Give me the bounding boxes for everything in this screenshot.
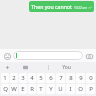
staticText: 5: [39, 74, 43, 82]
staticText: 9: [79, 74, 83, 82]
button[interactable]: You: [49, 62, 83, 72]
staticText: 10:22 am: [74, 6, 87, 10]
button[interactable]: Then you cannot: [29, 1, 94, 12]
button[interactable]: T: [37, 84, 45, 94]
button[interactable]: 7: [56, 73, 65, 83]
staticText: O: [78, 85, 83, 93]
button[interactable]: 0: [86, 73, 95, 83]
staticText: 8: [69, 74, 73, 82]
staticText: 3: [21, 74, 25, 82]
staticText: 0: [89, 74, 93, 82]
button[interactable]: 5: [37, 73, 45, 83]
button[interactable]: 1: [1, 73, 9, 83]
button[interactable]: W: [10, 84, 18, 94]
button[interactable]: E: [19, 84, 27, 94]
staticText: 2: [12, 74, 16, 82]
button[interactable]: Stickers: [14, 62, 36, 72]
staticText: W: [11, 85, 17, 93]
staticText: E: [21, 85, 25, 93]
button[interactable]: Emoji: [2, 51, 12, 61]
staticText: 1: [3, 74, 7, 82]
button[interactable]: 3: [19, 73, 27, 83]
button[interactable]: Camera: [84, 51, 94, 61]
staticText: Y: [49, 85, 53, 93]
staticText: 6: [49, 74, 53, 82]
staticText: I: [69, 85, 72, 93]
staticText: Q: [3, 85, 8, 93]
button[interactable]: [13, 51, 83, 60]
button[interactable]: I: [66, 84, 75, 94]
staticText: T: [39, 85, 43, 93]
staticText: You: [62, 64, 71, 71]
button[interactable]: Q: [1, 84, 9, 94]
button[interactable]: 4: [28, 73, 36, 83]
button[interactable]: R: [28, 84, 36, 94]
button[interactable]: U: [56, 84, 65, 94]
button[interactable]: P: [86, 84, 95, 94]
staticText: U: [58, 85, 63, 93]
button[interactable]: More options: [0, 62, 14, 72]
button[interactable]: O: [76, 84, 85, 94]
button[interactable]: 9: [76, 73, 85, 83]
staticText: P: [89, 85, 93, 93]
staticText: Then you cannot: [31, 3, 72, 10]
button[interactable]: 8: [66, 73, 75, 83]
button[interactable]: 6: [46, 73, 55, 83]
staticText: 4: [30, 74, 34, 82]
staticText: R: [30, 85, 34, 93]
button[interactable]: 2: [10, 73, 18, 83]
button[interactable]: Y: [46, 84, 55, 94]
staticText: 7: [59, 74, 63, 82]
